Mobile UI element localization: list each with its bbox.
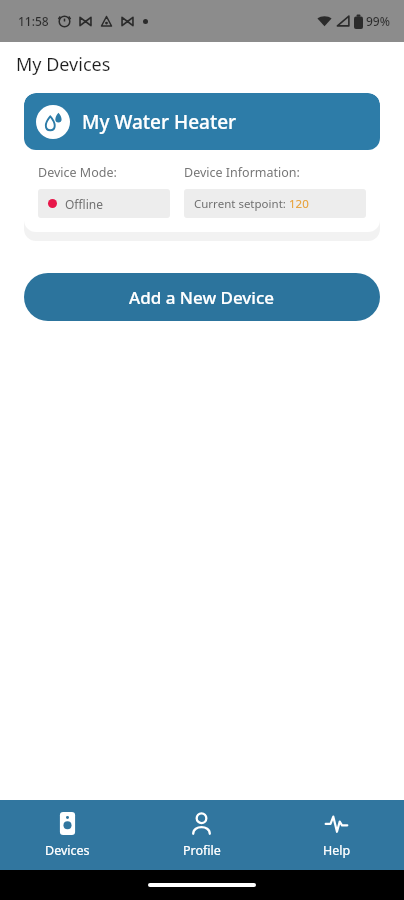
staticText: Current setpoint:: [194, 196, 289, 212]
button[interactable]: Add a New Device: [24, 273, 380, 321]
staticText: Profile: [183, 842, 221, 859]
staticText: My Water Heater: [82, 109, 237, 135]
staticText: 99%: [366, 13, 390, 29]
button[interactable]: Devices: [0, 804, 134, 867]
staticText: Add a New Device: [129, 286, 275, 309]
staticText: Offline: [65, 196, 104, 212]
staticText: 11:58: [18, 13, 49, 29]
staticText: My Devices: [16, 52, 111, 77]
staticText: Device Mode:: [38, 164, 117, 181]
button[interactable]: Help: [269, 804, 404, 867]
button[interactable]: Current setpoint:: [184, 189, 366, 218]
other: Profile: [190, 812, 213, 835]
button[interactable]: Offline: [38, 189, 170, 218]
other: Devices: [56, 812, 79, 835]
button[interactable]: Profile: [134, 804, 269, 867]
other: Help: [325, 812, 348, 835]
staticText: Device Information:: [184, 164, 300, 181]
staticText: Help: [323, 842, 351, 859]
staticText: 120: [289, 196, 309, 212]
staticText: Devices: [45, 842, 90, 859]
button[interactable]: My Water Heater: [24, 93, 380, 232]
